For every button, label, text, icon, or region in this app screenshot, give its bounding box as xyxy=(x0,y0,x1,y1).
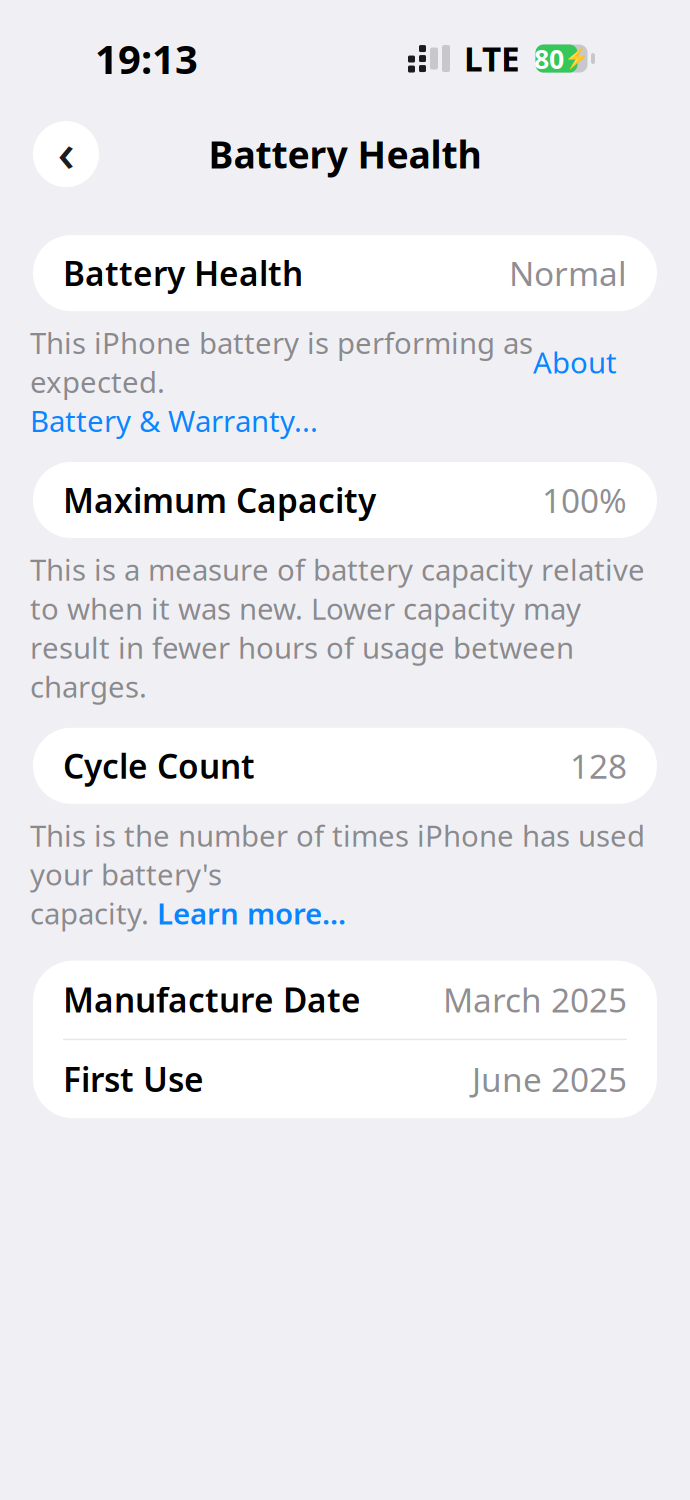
staticText: 128 xyxy=(570,744,627,788)
staticText: First Use xyxy=(63,1057,204,1101)
button[interactable]: Battery & Warranty... xyxy=(30,401,318,440)
staticText: This iPhone battery is performing as exp… xyxy=(30,323,533,401)
staticText: Maximum Capacity xyxy=(63,478,376,522)
staticText: March 2025 xyxy=(443,977,627,1022)
staticText: Battery Health xyxy=(63,251,303,295)
staticText: ⚡ xyxy=(564,47,589,70)
button[interactable]: Cycle Count xyxy=(33,728,657,804)
staticText: 80 xyxy=(534,41,564,76)
staticText: About xyxy=(533,343,617,382)
staticText: 100% xyxy=(542,478,627,522)
button[interactable]: Manufacture Date xyxy=(33,961,657,1039)
button[interactable]: Maximum Capacity xyxy=(33,462,657,538)
staticText: This is a measure of battery capacity re… xyxy=(30,550,645,706)
staticText: LTE xyxy=(464,36,520,81)
staticText: Learn more... xyxy=(157,894,346,933)
button[interactable]: Battery Health xyxy=(33,235,657,311)
button[interactable]: Learn more... xyxy=(157,894,346,933)
button[interactable]: Back xyxy=(33,121,99,187)
staticText: Battery & Warranty... xyxy=(30,401,318,440)
staticText: 19:13 xyxy=(95,32,198,85)
staticText: Battery Health xyxy=(208,129,481,179)
button[interactable]: About xyxy=(533,343,617,382)
staticText: Normal xyxy=(509,251,627,295)
staticText: This is the number of times iPhone has u… xyxy=(30,816,645,894)
staticText: ‹ xyxy=(57,116,74,186)
staticText: Cycle Count xyxy=(63,744,255,788)
staticText: June 2025 xyxy=(472,1057,627,1101)
staticText: Manufacture Date xyxy=(63,977,361,1022)
button[interactable]: First Use xyxy=(33,1040,657,1118)
staticText: capacity. xyxy=(30,894,157,933)
